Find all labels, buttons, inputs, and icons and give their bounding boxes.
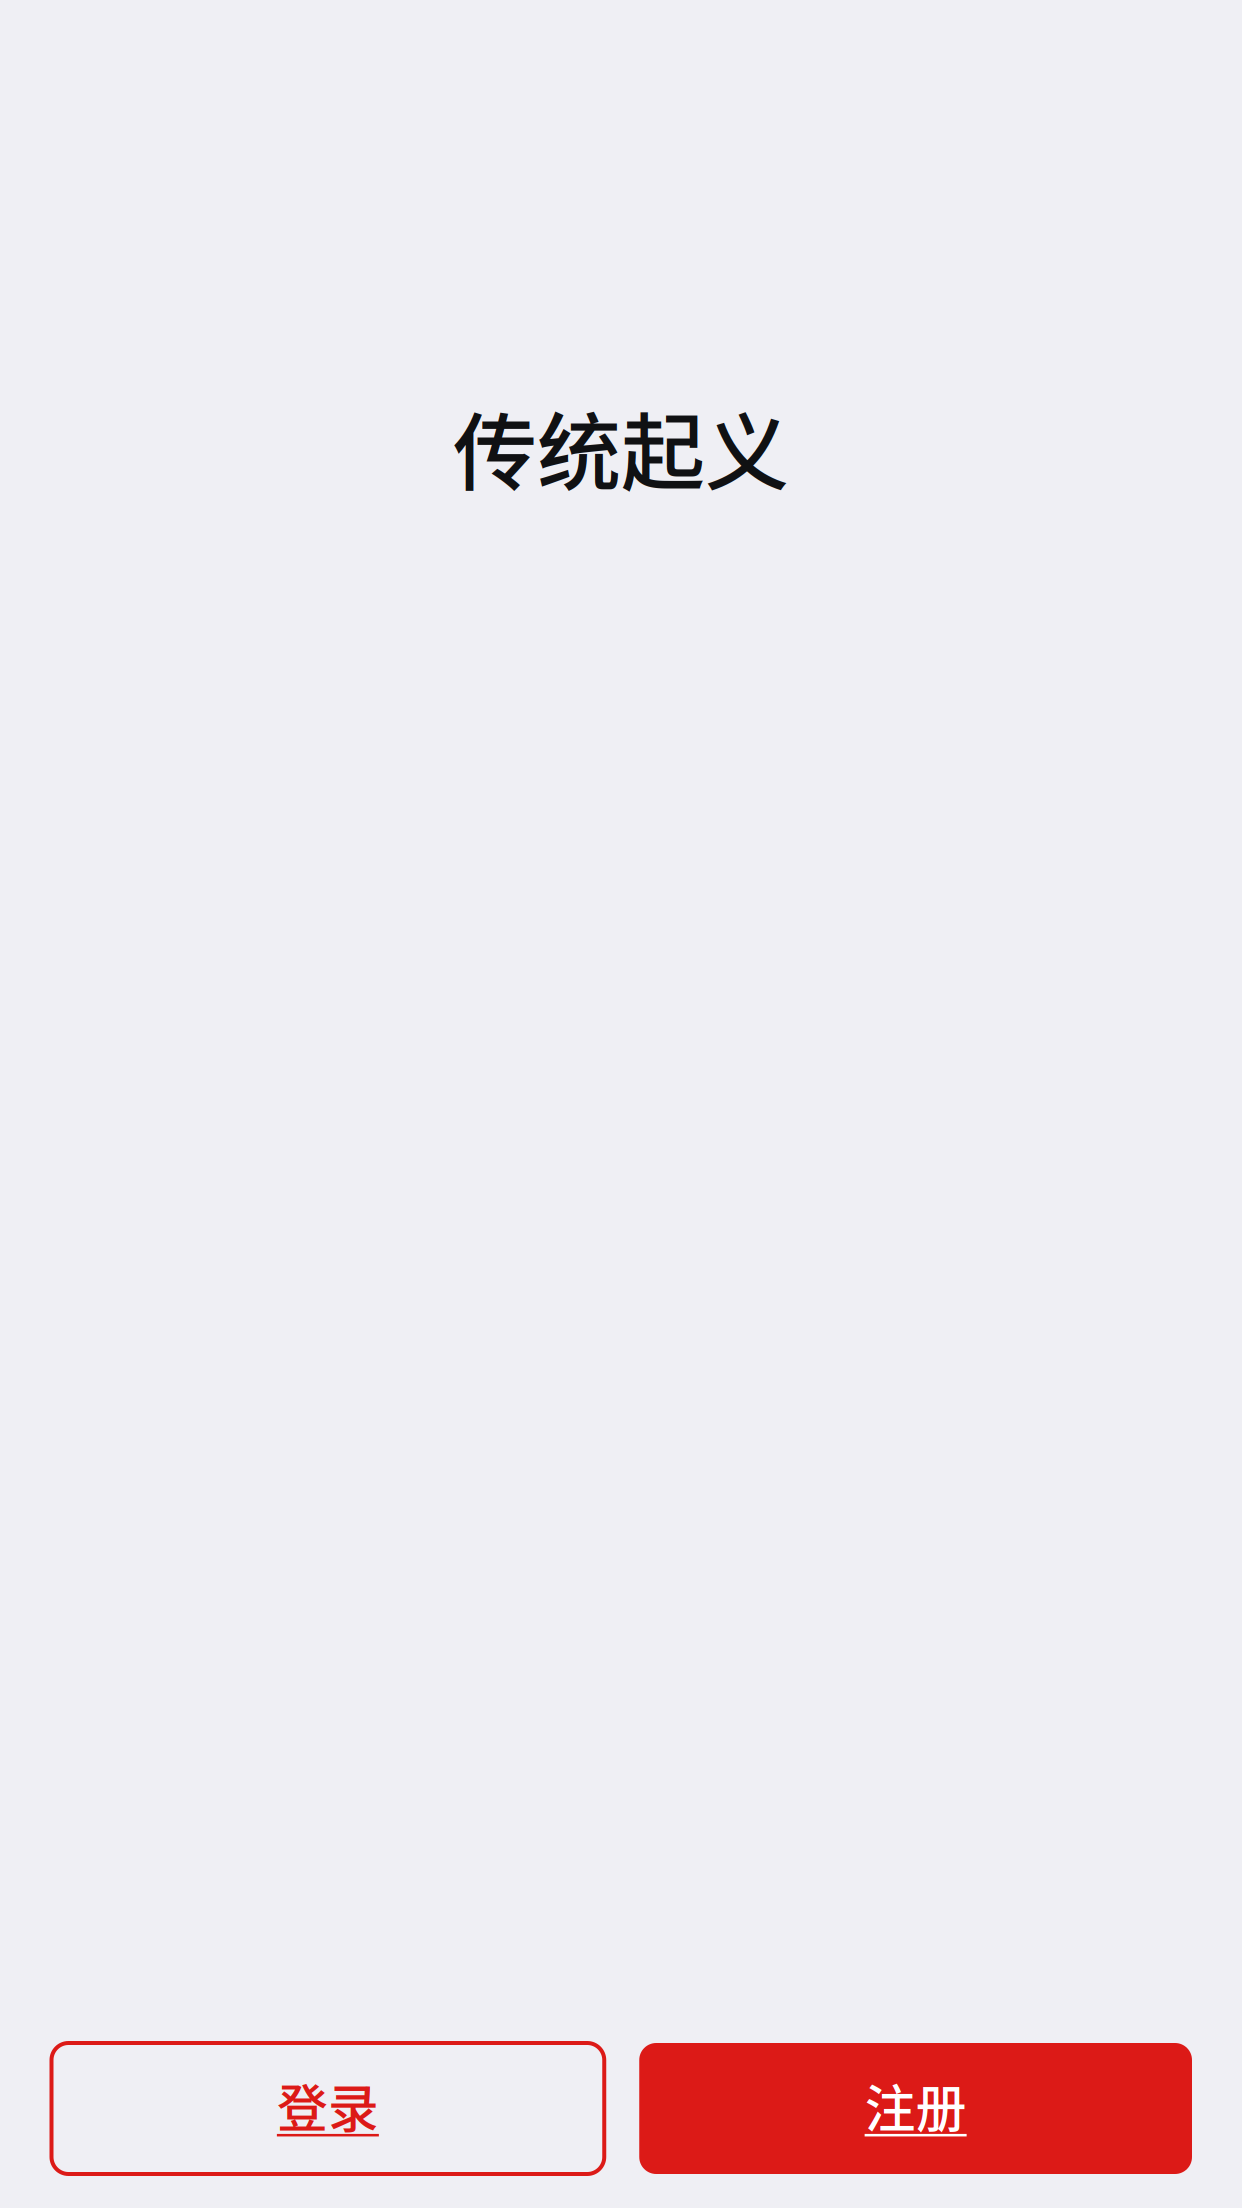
staticText: 传统起义 bbox=[453, 386, 789, 508]
staticText: 登录 bbox=[277, 2069, 379, 2142]
button[interactable]: 注册 bbox=[639, 2043, 1192, 2174]
staticText: 注册 bbox=[865, 2069, 967, 2142]
button[interactable]: 登录 bbox=[51, 2043, 604, 2174]
